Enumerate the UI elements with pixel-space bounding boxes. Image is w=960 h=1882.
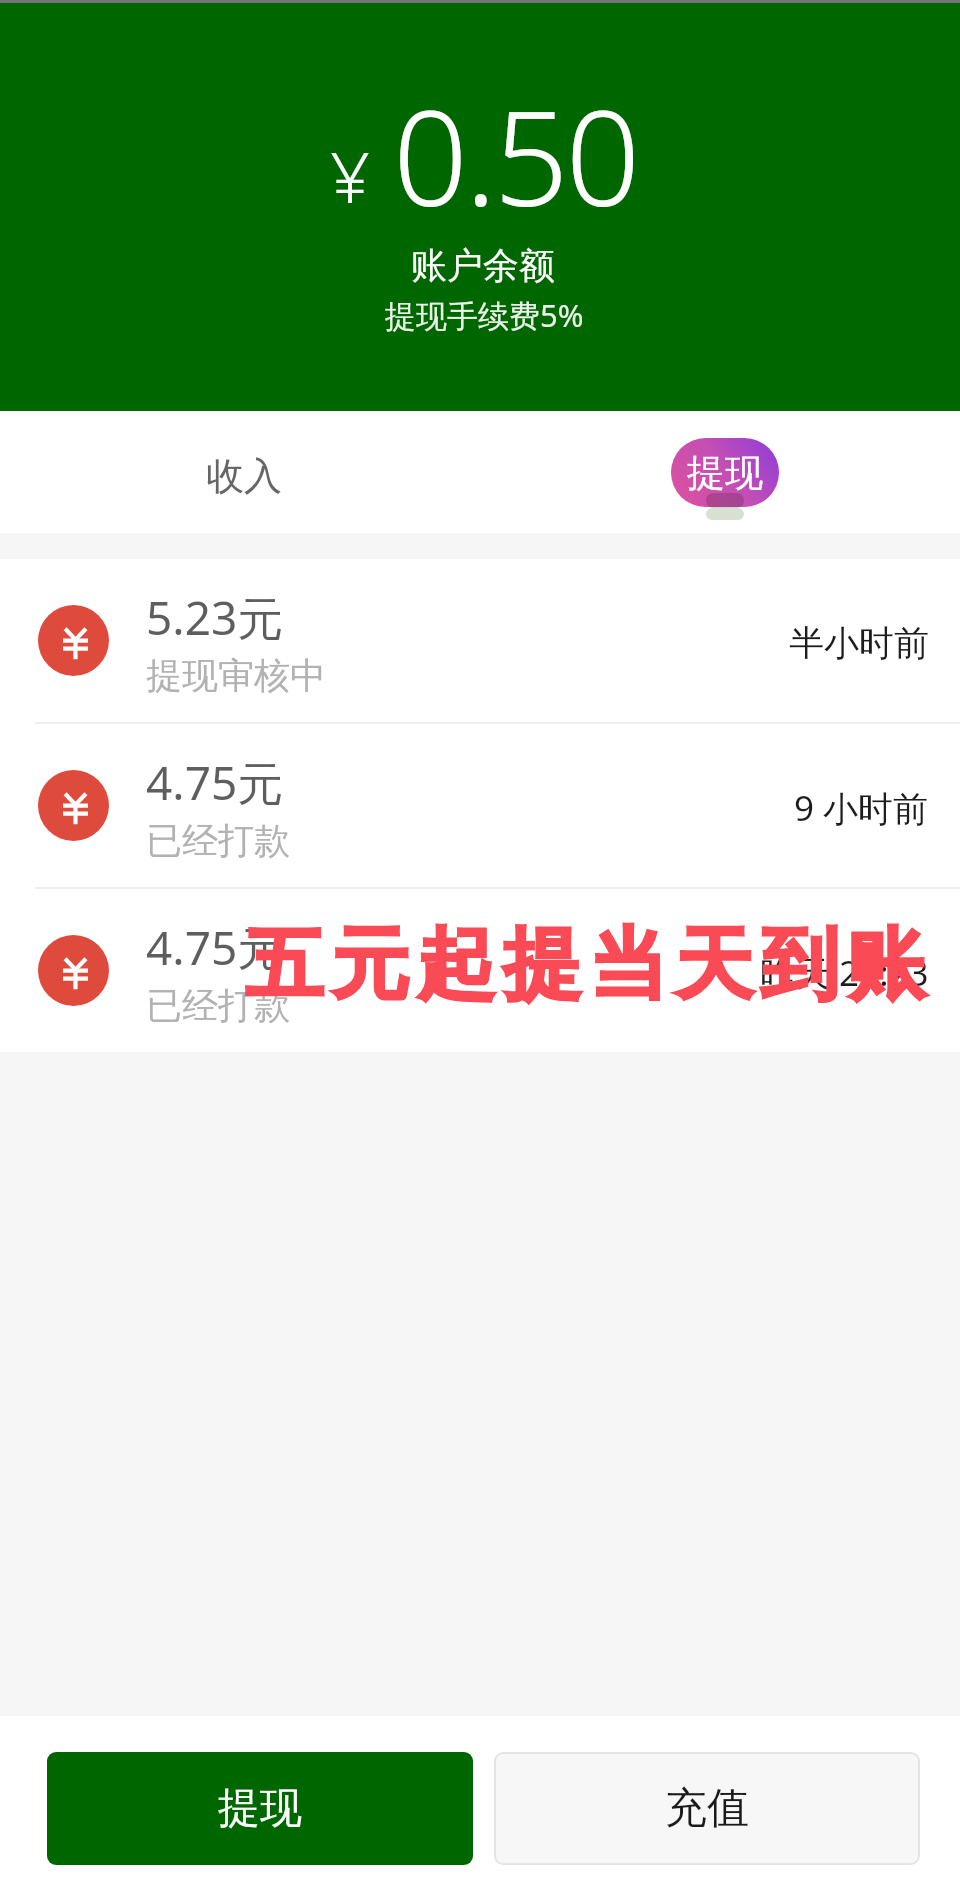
other: Yuan transaction [38,605,109,676]
staticText: 提现审核中 [146,653,326,698]
button[interactable]: 充值 [494,1752,920,1865]
staticText: 5.23元 [146,586,284,649]
staticText: 半小时前 [789,621,929,665]
button[interactable]: 提现 [629,411,821,533]
staticText: 账户余额 [411,243,555,288]
button[interactable]: Yuan transaction [0,724,960,887]
staticText: 已经打款 [146,818,290,863]
staticText: 已经打款 [146,983,290,1028]
staticText: 提现 [687,449,763,497]
button[interactable]: 收入 [148,411,340,533]
staticText: 提现 [218,1782,302,1835]
staticText: 提现手续费5% [385,294,584,336]
staticText: 4.75元 [146,916,284,979]
staticText: 0.50 [393,66,638,244]
button[interactable]: Yuan transaction [0,559,960,722]
staticText: 五元起提当天到账 [241,916,929,1014]
staticText: 收入 [206,452,282,500]
staticText: 充值 [665,1782,749,1835]
other: Yuan transaction [38,770,109,841]
staticText: 4.75元 [146,751,284,814]
staticText: 昨天 20:23 [760,949,929,997]
other: Yuan transaction [38,935,109,1006]
button[interactable]: 提现 [47,1752,473,1865]
button[interactable]: Yuan transaction [0,889,960,1052]
staticText: 9 小时前 [794,784,929,832]
staticText: ¥ [330,128,370,223]
